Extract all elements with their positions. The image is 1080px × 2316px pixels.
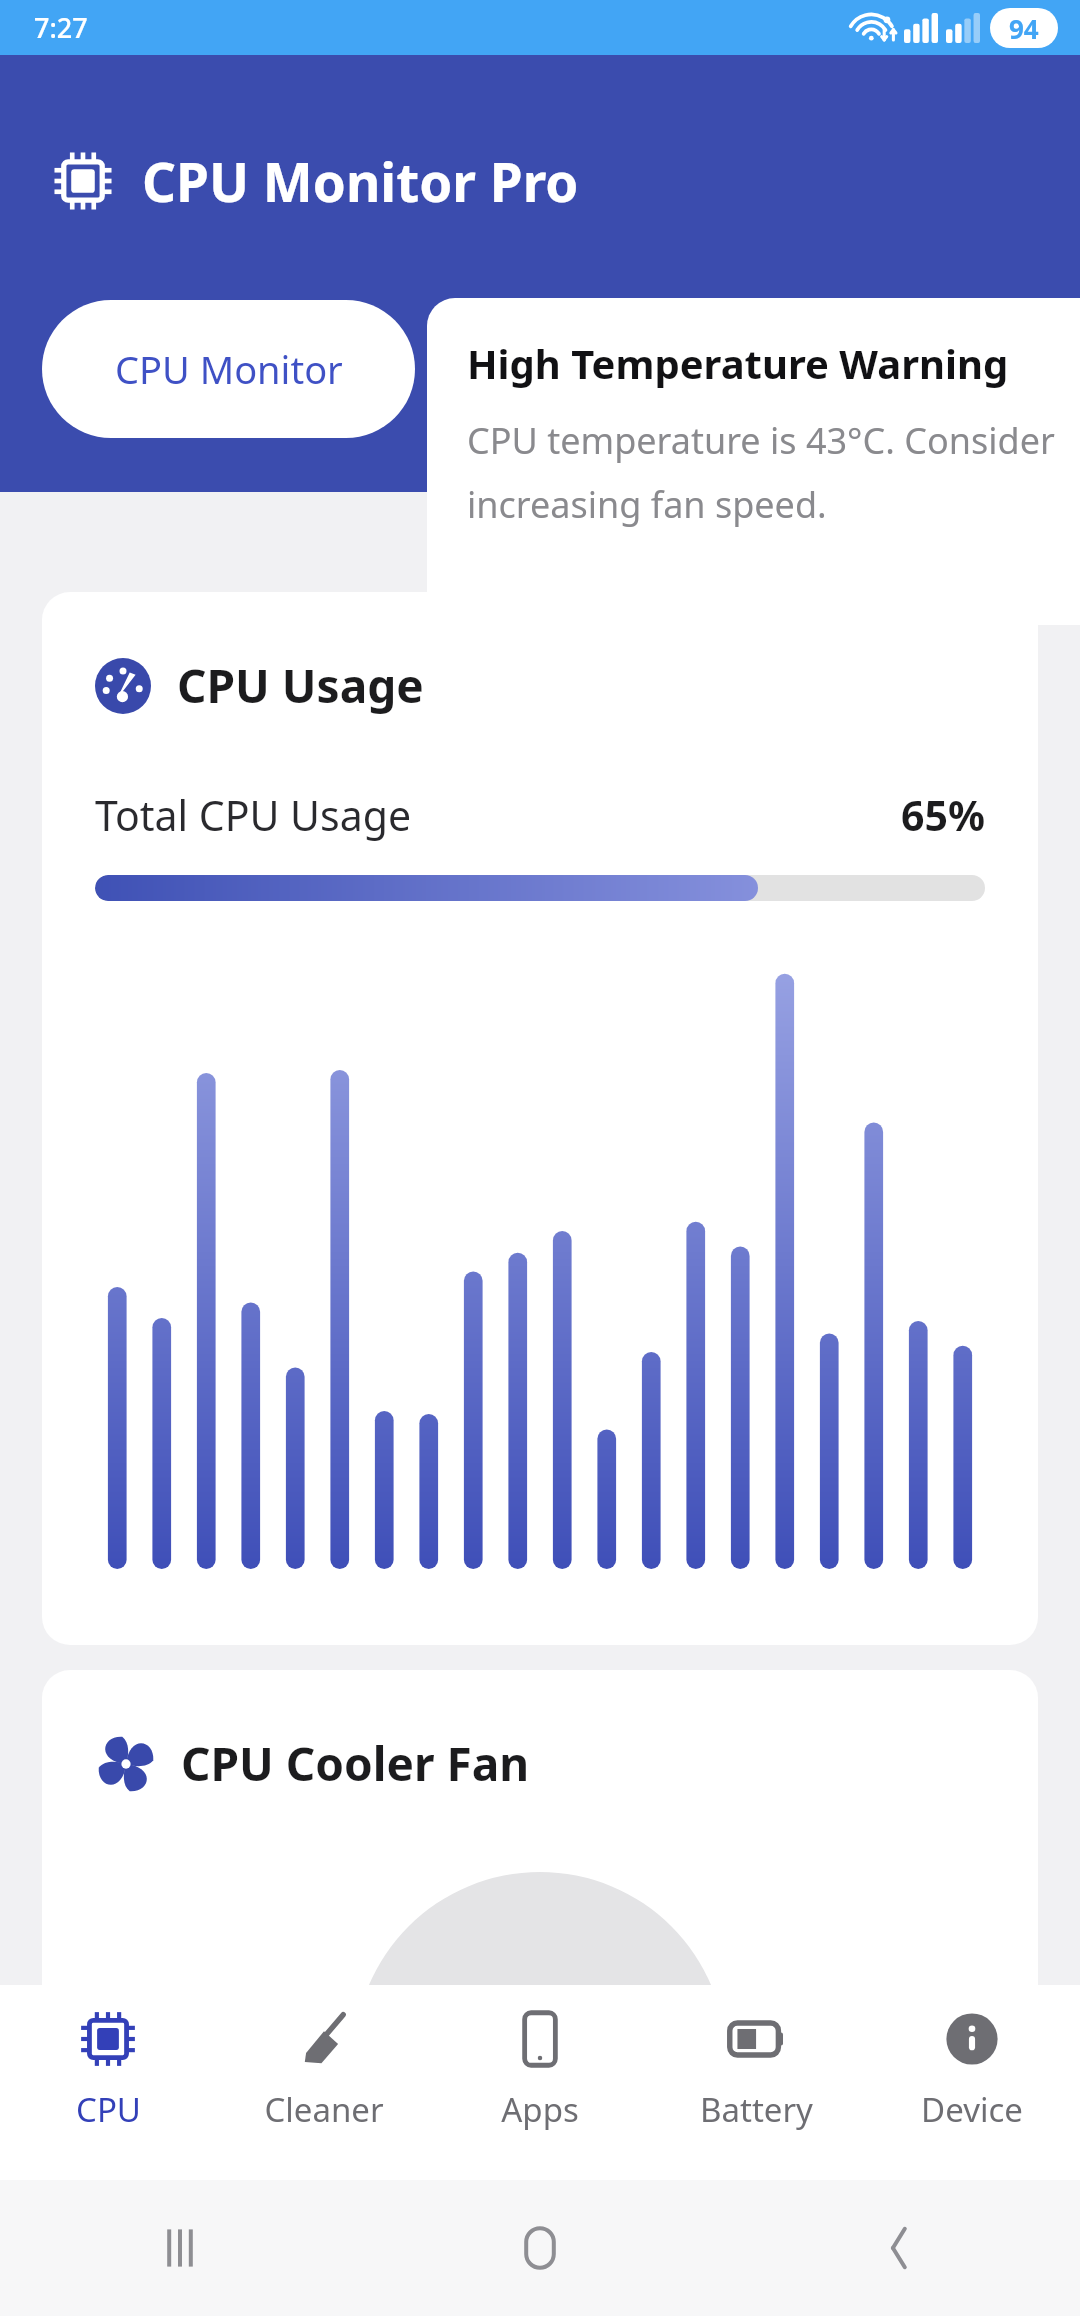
staticText: 94 [1009, 11, 1039, 46]
staticText: Device [921, 2087, 1023, 2132]
staticText: CPU temperature is 43°C. Consider increa… [467, 416, 1055, 529]
button[interactable]: Device [864, 1985, 1080, 2180]
button[interactable]: High Temperature Warning [427, 298, 1080, 625]
button[interactable]: CPU Usage [42, 592, 1038, 1645]
staticText: 65% [901, 787, 985, 843]
staticText: Apps [501, 2087, 579, 2132]
staticText: Total CPU Usage [95, 787, 412, 843]
staticText: CPU [76, 2087, 141, 2132]
staticText: 7:27 [34, 9, 88, 46]
button[interactable]: Battery [648, 1985, 864, 2180]
staticText: CPU Usage [177, 654, 424, 717]
staticText: High Temperature Warning [467, 336, 1009, 390]
button[interactable]: Apps [432, 1985, 648, 2180]
button[interactable]: Home [360, 2180, 720, 2316]
staticText: CPU Monitor [115, 343, 343, 395]
staticText: Battery [700, 2087, 813, 2132]
button[interactable]: Cleaner [216, 1985, 432, 2180]
staticText: CPU Cooler Fan [181, 1732, 530, 1795]
button[interactable]: Recent apps [0, 2180, 360, 2316]
button[interactable]: Back [720, 2180, 1080, 2316]
button[interactable]: CPU [0, 1985, 216, 2180]
staticText: CPU Monitor Pro [142, 145, 579, 217]
button[interactable]: CPU Cooler Fan [42, 1670, 1038, 2070]
button[interactable]: CPU Monitor [42, 300, 415, 438]
staticText: Cleaner [264, 2087, 384, 2132]
